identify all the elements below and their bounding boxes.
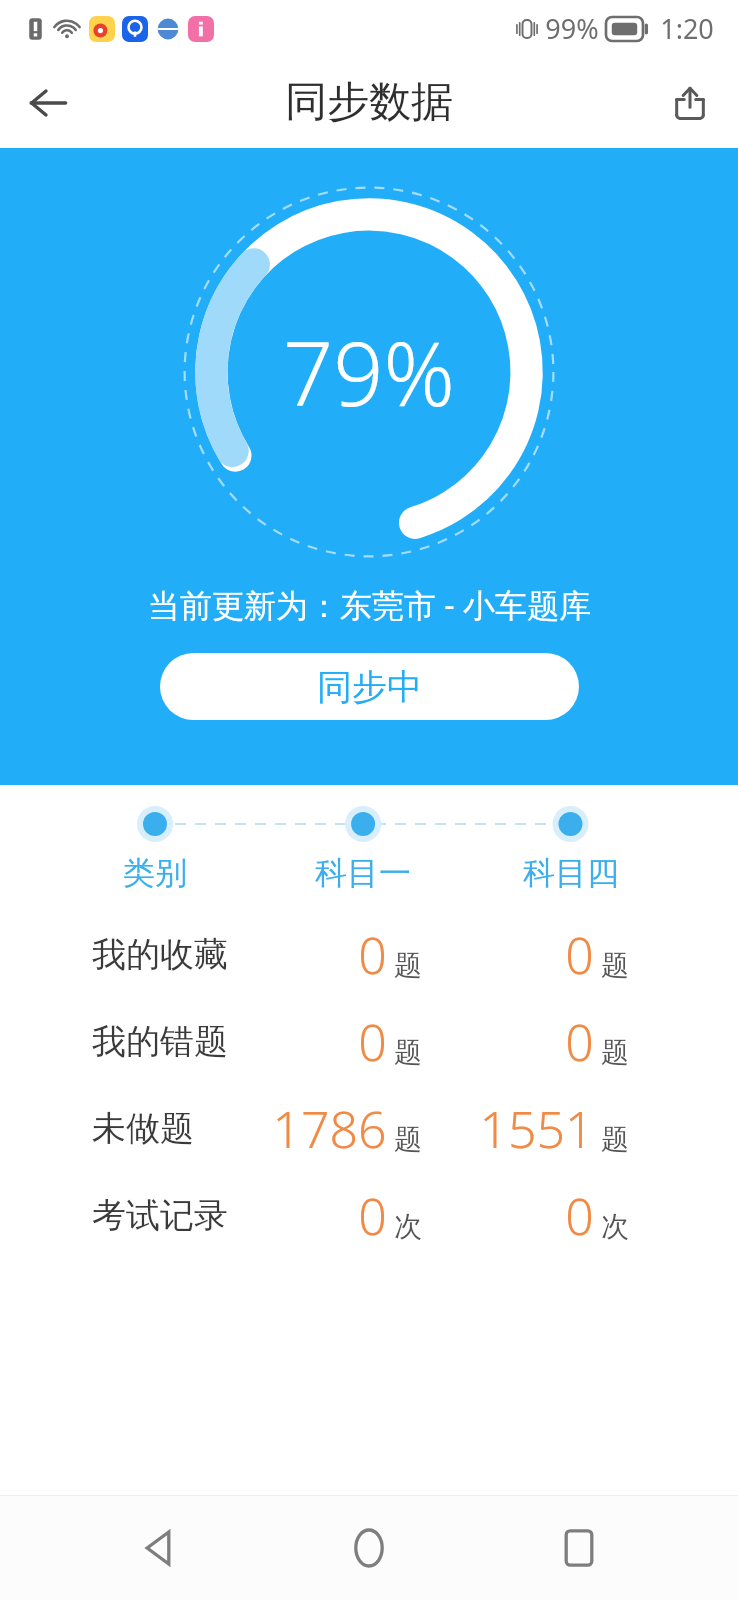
button[interactable]: 同步中	[160, 653, 579, 720]
button[interactable]: 考试记录	[0, 1172, 738, 1259]
button[interactable]: 我的收藏	[0, 911, 738, 998]
staticText: 题	[601, 1122, 629, 1157]
staticText: 次	[601, 1209, 629, 1244]
staticText: 同步中	[317, 665, 422, 709]
staticText: 同步数据	[285, 76, 453, 129]
button[interactable]: 科目一	[267, 849, 459, 897]
staticText: 99%	[545, 10, 599, 47]
staticText: 0	[565, 1008, 594, 1076]
staticText: 题	[601, 1035, 629, 1070]
staticText: 0	[565, 1182, 594, 1250]
staticText: 0	[358, 1182, 387, 1250]
staticText: 类别	[123, 853, 187, 893]
staticText: 我的错题	[92, 1020, 228, 1063]
staticText: 1786	[272, 1095, 387, 1163]
button[interactable]: Back	[12, 67, 84, 139]
button[interactable]: Back	[110, 1498, 210, 1598]
staticText: 我的收藏	[92, 933, 228, 976]
button[interactable]: 科目四	[475, 849, 667, 897]
staticText: 考试记录	[92, 1194, 228, 1237]
staticText: 当前更新为：东莞市 - 小车题库	[148, 583, 591, 627]
staticText: 题	[394, 948, 422, 983]
staticText: 1:20	[660, 10, 714, 47]
button[interactable]: Home	[319, 1498, 419, 1598]
staticText: 79%	[283, 312, 455, 432]
staticText: 0	[358, 1008, 387, 1076]
staticText: 科目一	[315, 853, 411, 893]
staticText: 题	[394, 1035, 422, 1070]
staticText: 1551	[479, 1095, 594, 1163]
staticText: 题	[601, 948, 629, 983]
button[interactable]: Share	[654, 67, 726, 139]
staticText: 0	[358, 921, 387, 989]
staticText: 0	[565, 921, 594, 989]
staticText: 未做题	[92, 1107, 194, 1150]
button[interactable]: 我的错题	[0, 998, 738, 1085]
button[interactable]: Recent apps	[529, 1498, 629, 1598]
staticText: 次	[394, 1209, 422, 1244]
staticText: 科目四	[523, 853, 619, 893]
button[interactable]: 未做题	[0, 1085, 738, 1172]
button[interactable]: 类别	[59, 849, 251, 897]
staticText: 题	[394, 1122, 422, 1157]
